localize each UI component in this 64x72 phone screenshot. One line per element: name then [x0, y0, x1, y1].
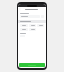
button[interactable]: [29, 24, 36, 27]
button[interactable]: [19, 63, 45, 67]
button[interactable]: [20, 28, 28, 31]
button[interactable]: [37, 24, 44, 27]
button[interactable]: [29, 28, 36, 31]
button[interactable]: Back: [18, 7, 46, 11]
button[interactable]: [20, 15, 40, 18]
button[interactable]: [20, 24, 28, 27]
